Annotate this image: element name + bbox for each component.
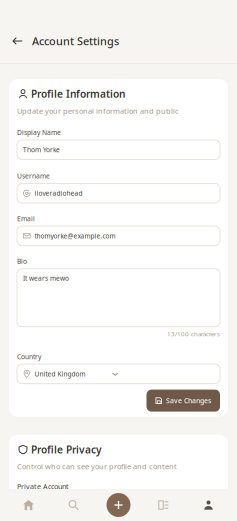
staticText: Account Settings <box>32 34 119 48</box>
button[interactable]: Profile <box>186 489 231 521</box>
staticText: Country <box>17 352 41 361</box>
button[interactable]: Save Changes <box>146 390 220 412</box>
staticText: Private Account <box>17 481 69 491</box>
staticText: thomyorke@example.com <box>34 231 115 240</box>
staticText: Control who can see your profile and con… <box>17 461 177 471</box>
staticText: Username <box>17 171 50 181</box>
staticText: Profile Privacy <box>31 443 102 456</box>
staticText: Display Name <box>17 128 61 137</box>
staticText: It wears mewo <box>23 274 69 283</box>
staticText: iloveradiohead <box>34 189 82 198</box>
button[interactable]: Back <box>11 33 24 49</box>
staticText: 13/100 characters <box>167 330 220 338</box>
staticText: Profile Information <box>31 87 125 101</box>
button[interactable]: Library <box>141 489 186 521</box>
button[interactable]: Create <box>96 489 141 521</box>
button[interactable]: Search <box>51 489 96 521</box>
staticText: Email <box>17 214 35 223</box>
button[interactable]: Home <box>6 489 51 521</box>
staticText: United Kingdom <box>34 369 85 378</box>
staticText: Save Changes <box>166 396 211 405</box>
staticText: Thom Yorke <box>23 145 60 154</box>
staticText: Bio <box>17 257 27 266</box>
staticText: Update your personal information and pub… <box>17 106 179 116</box>
